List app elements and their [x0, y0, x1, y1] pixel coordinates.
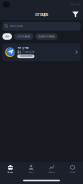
staticText: Groups — [7, 171, 13, 173]
staticText: supergroup — [24, 51, 34, 53]
button[interactable]: Search groups... — [2, 22, 81, 31]
button[interactable]: Disconnected — [35, 33, 58, 40]
staticText: Search groups... — [10, 25, 26, 28]
staticText: Disconnected — [38, 35, 55, 38]
staticText: Users — [29, 171, 34, 173]
staticText: Groups — [35, 12, 48, 17]
staticText: Analytics — [48, 171, 55, 173]
staticText: Connected — [17, 35, 31, 38]
staticText: 3 — [22, 51, 23, 53]
button[interactable]: Users — [21, 165, 42, 173]
button[interactable]: Test group — [2, 43, 81, 61]
button[interactable]: Connected — [14, 33, 33, 40]
staticText: Test group — [17, 46, 28, 49]
button[interactable]: Filter — [70, 9, 80, 20]
button[interactable]: Profile — [62, 165, 83, 173]
staticText: Profile — [70, 171, 75, 173]
staticText: -1002345678901 — [19, 55, 33, 57]
button[interactable]: Analytics — [41, 165, 62, 173]
button[interactable]: Groups — [0, 165, 21, 173]
staticText: All — [5, 35, 9, 38]
button[interactable]: All — [2, 33, 12, 40]
